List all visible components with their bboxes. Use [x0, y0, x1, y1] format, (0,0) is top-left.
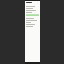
button[interactable]	[26, 5, 39, 7]
button[interactable]	[26, 25, 39, 27]
button[interactable]	[26, 2, 32, 3]
button[interactable]	[26, 19, 39, 21]
button[interactable]	[26, 14, 39, 16]
button[interactable]	[26, 21, 39, 23]
button[interactable]	[26, 9, 39, 11]
button[interactable]	[26, 17, 39, 19]
button[interactable]	[26, 11, 39, 13]
button[interactable]	[26, 23, 39, 25]
button[interactable]	[26, 7, 39, 9]
